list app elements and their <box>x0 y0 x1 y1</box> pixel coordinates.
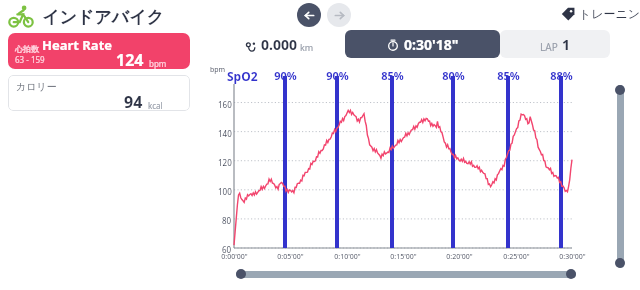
staticText: 0.000 <box>261 35 297 54</box>
staticText: 90% <box>274 68 297 83</box>
staticText: 140 <box>218 128 232 139</box>
staticText: 0:15'00" <box>390 252 417 262</box>
button[interactable]: Previous <box>297 3 321 27</box>
button[interactable]: Training tag <box>561 6 640 21</box>
button[interactable] <box>236 269 246 279</box>
staticText: トレーニング <box>579 6 640 21</box>
staticText: 心拍数 <box>15 44 39 54</box>
staticText: 94 <box>124 91 143 111</box>
button[interactable]: カロリー <box>8 75 190 111</box>
staticText: 1 <box>562 35 571 54</box>
button[interactable]: 0:30'18" <box>345 30 500 58</box>
staticText: 63 - 159 <box>15 54 45 65</box>
staticText: 0:30'18" <box>404 35 459 54</box>
staticText: 80 <box>222 215 232 226</box>
staticText: 0:25'00" <box>503 252 530 262</box>
button[interactable]: Next <box>327 3 351 27</box>
staticText: 88% <box>550 68 573 83</box>
staticText: カロリー <box>16 80 57 93</box>
staticText: LAP <box>540 40 558 54</box>
staticText: bpm <box>149 58 167 69</box>
button[interactable] <box>615 258 625 268</box>
staticText: 124 <box>116 49 144 69</box>
staticText: 80% <box>442 68 465 83</box>
staticText: 85% <box>497 68 520 83</box>
staticText: 90% <box>326 68 349 83</box>
button[interactable] <box>566 269 576 279</box>
staticText: kcal <box>148 100 163 111</box>
staticText: SpO2 <box>227 68 258 84</box>
staticText: Heart Rate <box>42 36 113 54</box>
other: Training tag <box>561 7 575 21</box>
staticText: 0:30'00" <box>559 252 586 262</box>
staticText: 0:20'00" <box>446 252 473 262</box>
staticText: 0:00'00" <box>221 252 248 262</box>
button[interactable]: Time range <box>236 271 576 278</box>
staticText: 0:05'00" <box>277 252 304 262</box>
staticText: 100 <box>218 186 232 197</box>
button[interactable]: Vertical zoom range <box>617 85 624 268</box>
button[interactable]: 0.000 <box>213 30 345 58</box>
staticText: 0:10'00" <box>334 252 361 262</box>
staticText: 160 <box>218 99 232 110</box>
staticText: bpm <box>210 65 226 75</box>
staticText: 85% <box>381 68 404 83</box>
staticText: km <box>300 41 314 53</box>
staticText: 120 <box>218 157 232 168</box>
staticText: インドアバイク <box>42 7 164 28</box>
staticText: 60 <box>222 244 232 255</box>
button[interactable] <box>615 85 625 95</box>
button[interactable]: 心拍数 <box>8 33 190 69</box>
button[interactable]: LAP <box>500 30 610 58</box>
